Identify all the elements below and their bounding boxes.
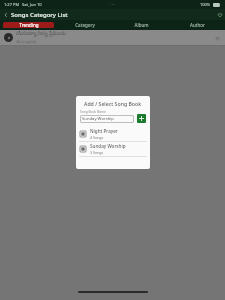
button[interactable]: Author [172, 22, 222, 28]
staticText: 3 Songs [90, 150, 104, 155]
staticText: Sunday Worship [90, 143, 126, 149]
button[interactable]: Favorites [214, 9, 225, 20]
staticText: 4 Songs [90, 135, 104, 140]
staticText: 100% [200, 2, 211, 7]
staticText: Author [190, 22, 205, 28]
button[interactable]: Back [0, 9, 11, 20]
staticText: Trending [19, 22, 39, 28]
staticText: యేసు ప్రభువు [16, 39, 37, 45]
staticText: Add / Select Song Book [84, 100, 142, 107]
staticText: Album [134, 22, 149, 28]
button[interactable]: Favorite [213, 34, 221, 42]
button[interactable]: Trending [3, 22, 54, 28]
button[interactable]: యేసయ్యా నిన్ను ప్రేమించు [0, 30, 225, 45]
button[interactable]: Sunday Worship [80, 115, 134, 123]
button[interactable]: Sunday Worship [76, 142, 150, 156]
staticText: Sat, Jun 10 [22, 2, 42, 7]
button[interactable]: Album [116, 22, 166, 28]
staticText: 1:27 PM [4, 2, 20, 7]
button[interactable]: Category [60, 22, 110, 28]
staticText: Song Book Name [80, 110, 106, 114]
button[interactable]: Night Prayer [76, 127, 150, 141]
staticText: Songs Category List [11, 11, 68, 19]
staticText: Sunday Worship [82, 116, 114, 122]
staticText: Night Prayer [90, 128, 118, 134]
button[interactable]: Add song book [137, 114, 146, 123]
staticText: యేసయ్యా నిన్ను ప్రేమించు [16, 30, 67, 38]
staticText: Category [75, 22, 95, 28]
